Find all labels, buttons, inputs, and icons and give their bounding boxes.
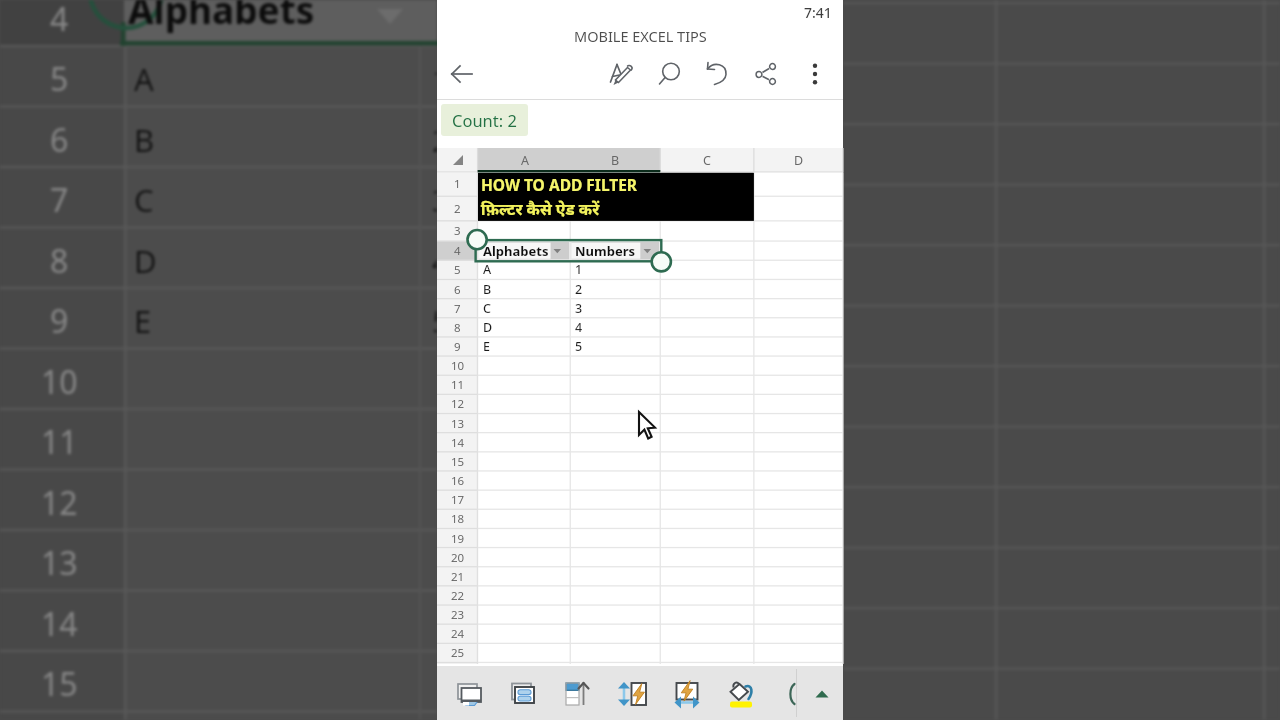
button[interactable]: Numbers xyxy=(570,241,660,260)
button[interactable]: E xyxy=(478,337,571,356)
staticText: 21 xyxy=(451,569,465,585)
button[interactable]: Formula xyxy=(779,681,805,707)
staticText: Alphabets xyxy=(128,0,315,34)
button[interactable]: More options xyxy=(798,57,832,91)
staticText: D xyxy=(134,240,157,282)
button[interactable]: 21 xyxy=(437,567,478,586)
staticText: Count: 2 xyxy=(452,109,517,131)
button[interactable]: C xyxy=(478,299,571,318)
staticText: B xyxy=(134,119,155,161)
button[interactable]: 1 xyxy=(437,172,478,196)
button[interactable]: Edit text xyxy=(599,53,641,95)
button[interactable]: Undo xyxy=(696,53,738,95)
button[interactable]: 4 xyxy=(437,241,478,260)
button[interactable]: Share xyxy=(745,53,787,95)
button[interactable]: 9 xyxy=(437,337,478,356)
staticText: B xyxy=(483,281,492,298)
staticText: 14 xyxy=(41,602,78,646)
staticText: 10 xyxy=(451,358,465,374)
staticText: 6 xyxy=(50,118,69,162)
staticText: 4 xyxy=(454,243,461,259)
button[interactable]: Expand toolbar xyxy=(809,681,835,707)
button[interactable]: 2 xyxy=(570,280,660,299)
button[interactable]: 13 xyxy=(437,414,478,433)
staticText: 5 xyxy=(575,338,583,355)
button[interactable]: AutoFit column width xyxy=(668,675,706,713)
button[interactable]: D xyxy=(754,148,843,172)
button[interactable]: B xyxy=(570,148,660,172)
staticText: 6 xyxy=(454,282,461,298)
button[interactable]: 12 xyxy=(437,394,478,413)
button[interactable]: Sort xyxy=(557,675,595,713)
staticText: D xyxy=(483,319,493,336)
staticText: E xyxy=(134,300,152,342)
button[interactable]: Search xyxy=(648,53,690,95)
button[interactable]: Back xyxy=(441,53,483,95)
button[interactable]: 3 xyxy=(570,299,660,318)
button[interactable]: 18 xyxy=(437,509,478,528)
button[interactable]: 22 xyxy=(437,586,478,605)
button[interactable]: A xyxy=(478,260,571,279)
staticText: 12 xyxy=(451,396,465,412)
button[interactable]: 17 xyxy=(437,490,478,509)
button[interactable]: 4 xyxy=(570,318,660,337)
staticText: 8 xyxy=(50,239,69,283)
staticText: 7:41 xyxy=(804,3,832,22)
staticText: 4 xyxy=(432,240,437,282)
button[interactable]: 25 xyxy=(437,643,478,662)
button[interactable]: Cell styles xyxy=(503,675,541,713)
button[interactable]: 19 xyxy=(437,529,478,548)
staticText: 9 xyxy=(50,299,69,343)
staticText: 13 xyxy=(451,416,465,432)
button[interactable]: 7 xyxy=(437,299,478,318)
staticText: 3 xyxy=(454,223,461,239)
staticText: C xyxy=(703,152,711,169)
button[interactable]: 11 xyxy=(437,375,478,394)
staticText: 15 xyxy=(451,454,465,470)
button[interactable]: 24 xyxy=(437,624,478,643)
staticText: C xyxy=(483,300,491,317)
staticText: 9 xyxy=(454,339,461,355)
staticText: 4 xyxy=(575,319,583,336)
button[interactable]: 5 xyxy=(437,260,478,279)
button[interactable]: 8 xyxy=(437,318,478,337)
button[interactable]: C xyxy=(660,148,754,172)
staticText: 7 xyxy=(50,178,69,222)
button[interactable]: 1 xyxy=(570,260,660,279)
button[interactable]: Count: 2 xyxy=(441,104,528,136)
staticText: C xyxy=(134,179,154,221)
staticText: 23 xyxy=(451,607,465,623)
button[interactable]: Alphabets xyxy=(478,241,571,260)
button[interactable]: 6 xyxy=(437,280,478,299)
button[interactable]: B xyxy=(478,280,571,299)
staticText: 3 xyxy=(432,179,437,221)
staticText: 20 xyxy=(451,550,465,566)
staticText: 24 xyxy=(451,626,465,642)
staticText: 11 xyxy=(41,420,78,464)
button[interactable]: 10 xyxy=(437,356,478,375)
button[interactable]: D xyxy=(478,318,571,337)
staticText: HOW TO ADD FILTER xyxy=(481,174,638,195)
button[interactable]: Fill colour xyxy=(722,675,760,713)
button[interactable]: 20 xyxy=(437,548,478,567)
staticText: 10 xyxy=(41,360,78,404)
staticText: B xyxy=(611,152,620,169)
button[interactable]: 3 xyxy=(437,221,478,241)
staticText: 1 xyxy=(454,176,461,192)
button[interactable]: 15 xyxy=(437,452,478,471)
button[interactable]: 23 xyxy=(437,605,478,624)
staticText: 4 xyxy=(50,0,69,41)
staticText: 22 xyxy=(451,588,465,604)
button[interactable]: AutoFit row height xyxy=(612,675,650,713)
staticText: MOBILE EXCEL TIPS xyxy=(574,26,707,46)
staticText: D xyxy=(794,152,804,169)
button[interactable]: 2 xyxy=(437,196,478,221)
staticText: 3 xyxy=(575,300,583,317)
staticText: 15 xyxy=(41,662,78,706)
button[interactable]: 14 xyxy=(437,433,478,452)
staticText: 1 xyxy=(575,261,583,278)
button[interactable]: Freeze panes xyxy=(450,675,488,713)
button[interactable]: 5 xyxy=(570,337,660,356)
button[interactable]: A xyxy=(478,148,571,172)
button[interactable]: 16 xyxy=(437,471,478,490)
